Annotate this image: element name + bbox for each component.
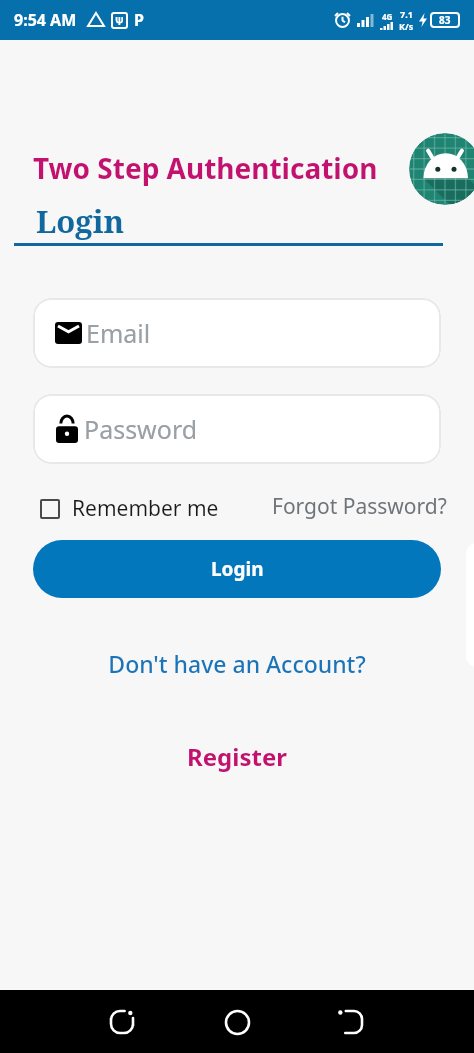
- button[interactable]: [327, 998, 375, 1046]
- button[interactable]: Forgot Password?: [272, 492, 447, 521]
- staticText: Password: [84, 412, 198, 446]
- staticText: Login: [211, 556, 264, 582]
- button[interactable]: Remember me: [40, 494, 219, 523]
- button[interactable]: [213, 998, 261, 1046]
- staticText: 7.1: [400, 8, 413, 20]
- button[interactable]: Don't have an Account?: [0, 648, 474, 679]
- button[interactable]: Register: [0, 740, 474, 773]
- button[interactable]: Login: [33, 540, 441, 598]
- staticText: Ψ: [115, 14, 124, 28]
- button[interactable]: Password: [33, 394, 441, 464]
- staticText: Remember me: [72, 494, 219, 523]
- button[interactable]: Email: [33, 298, 441, 368]
- staticText: Email: [86, 316, 151, 350]
- staticText: K/s: [399, 20, 414, 32]
- staticText: P: [134, 9, 144, 31]
- staticText: Login: [36, 200, 125, 242]
- staticText: 9:54 AM: [14, 9, 77, 31]
- staticText: Two Step Authentication: [33, 149, 378, 187]
- staticText: 4G: [382, 11, 393, 22]
- staticText: 83: [439, 13, 451, 27]
- button[interactable]: [98, 998, 146, 1046]
